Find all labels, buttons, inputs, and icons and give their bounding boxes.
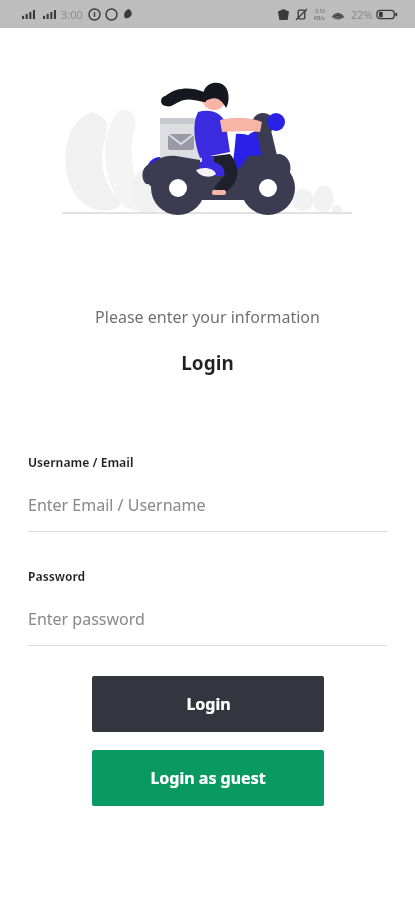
staticText: Enter Email / Username bbox=[28, 494, 206, 516]
staticText: Username / Email bbox=[28, 454, 134, 470]
staticText: Login as guest bbox=[150, 767, 266, 789]
staticText: Enter password bbox=[28, 608, 145, 630]
staticText: 3:00 bbox=[61, 7, 83, 22]
staticText: KB/s bbox=[314, 15, 325, 22]
staticText: 22% bbox=[351, 7, 373, 22]
staticText: Login bbox=[0, 350, 415, 376]
staticText: 3.10 bbox=[315, 8, 325, 15]
staticText: Please enter your information bbox=[0, 306, 415, 328]
staticText: Login bbox=[186, 693, 231, 715]
button[interactable]: Login as guest bbox=[92, 750, 324, 806]
button[interactable]: Enter password bbox=[28, 608, 387, 630]
button[interactable]: Login bbox=[92, 676, 324, 732]
staticText: Password bbox=[28, 568, 86, 584]
button[interactable]: Enter Email / Username bbox=[28, 494, 387, 516]
